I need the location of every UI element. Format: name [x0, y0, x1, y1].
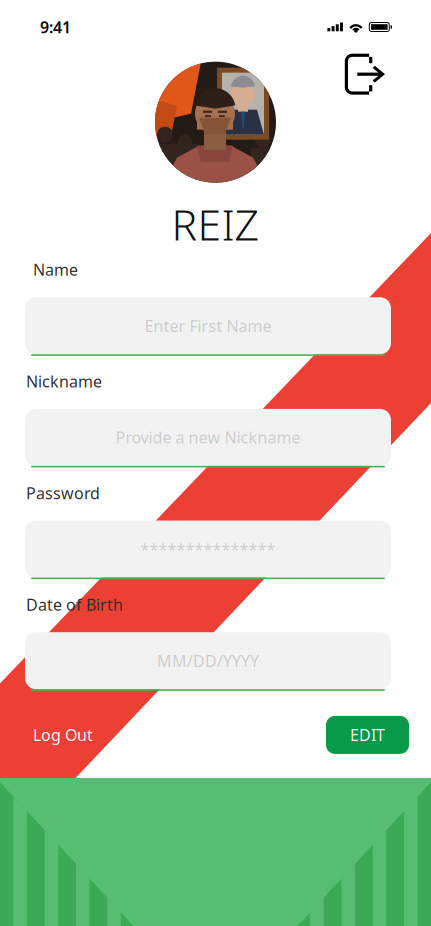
staticText: ***************: [140, 538, 275, 560]
staticText: MM/DD/YYYY: [157, 650, 259, 671]
button[interactable]: ***************: [0, 520, 391, 579]
staticText: Enter First Name: [144, 315, 271, 336]
staticText: EDIT: [350, 724, 385, 745]
staticText: 9:41: [40, 16, 71, 38]
button[interactable]: Log Out: [25, 715, 101, 754]
staticText: Password: [26, 482, 100, 503]
button[interactable]: Enter First Name: [0, 297, 391, 356]
button[interactable]: Provide a new Nickname: [0, 409, 391, 467]
staticText: REIZ: [171, 196, 259, 252]
staticText: Provide a new Nickname: [115, 427, 300, 448]
button[interactable]: MM/DD/YYYY: [0, 632, 391, 691]
staticText: Name: [33, 259, 78, 280]
button[interactable]: Log out: [338, 47, 392, 102]
staticText: Log Out: [33, 724, 93, 745]
staticText: Date of Birth: [26, 594, 123, 615]
staticText: Nickname: [26, 371, 102, 392]
button[interactable]: EDIT: [326, 716, 409, 754]
